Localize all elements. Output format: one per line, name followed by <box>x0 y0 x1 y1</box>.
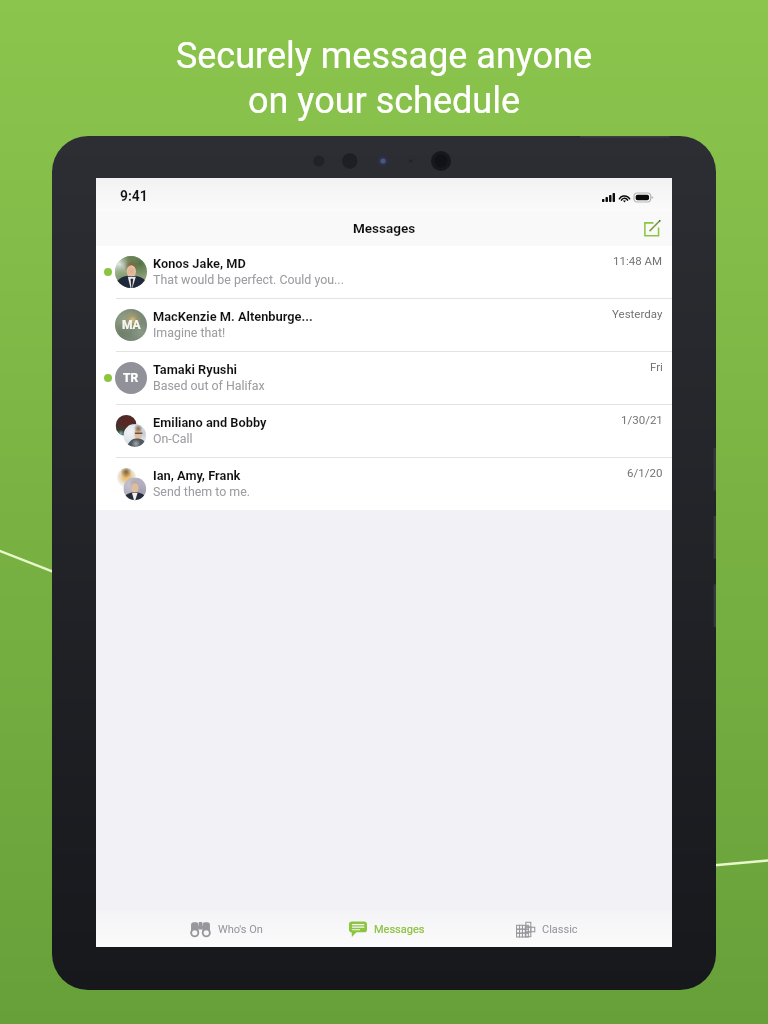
button[interactable]: Ian, Amy, Frank <box>96 458 672 510</box>
staticText: Tamaki Ryushi <box>153 362 237 377</box>
button[interactable]: Messages <box>341 915 433 943</box>
button[interactable]: Who's On <box>182 916 271 943</box>
staticText: 9:41 <box>120 188 148 204</box>
staticText: Based out of Halifax <box>153 378 265 393</box>
staticText: Konos Jake, MD <box>153 256 246 271</box>
staticText: Messages <box>353 220 416 236</box>
staticText: MA <box>122 318 141 332</box>
staticText: 6/1/20 <box>627 466 663 479</box>
staticText: On-Call <box>153 431 193 446</box>
button[interactable]: Compose new message <box>638 216 664 242</box>
staticText: TR <box>123 371 139 385</box>
staticText: 1/30/21 <box>621 413 663 426</box>
staticText: Messages <box>374 923 425 936</box>
staticText: Emiliano and Bobby <box>153 415 267 430</box>
staticText: MacKenzie M. Altenburge... <box>153 309 313 324</box>
button[interactable]: TR <box>96 352 672 404</box>
staticText: Yesterday <box>612 307 663 320</box>
staticText: Send them to me. <box>153 484 250 499</box>
staticText: Classic <box>542 923 578 936</box>
button[interactable]: Konos Jake, MD <box>96 246 672 298</box>
staticText: Securely message anyone on your schedule <box>0 35 768 122</box>
staticText: Who's On <box>218 923 263 936</box>
button[interactable]: Classic <box>508 916 586 943</box>
staticText: Imagine that! <box>153 325 226 340</box>
button[interactable]: Emiliano and Bobby <box>96 405 672 457</box>
staticText: Fri <box>650 360 663 373</box>
staticText: That would be perfect. Could you... <box>153 272 344 287</box>
staticText: Ian, Amy, Frank <box>153 468 241 483</box>
button[interactable]: MA <box>96 299 672 351</box>
staticText: 11:48 AM <box>613 254 663 267</box>
